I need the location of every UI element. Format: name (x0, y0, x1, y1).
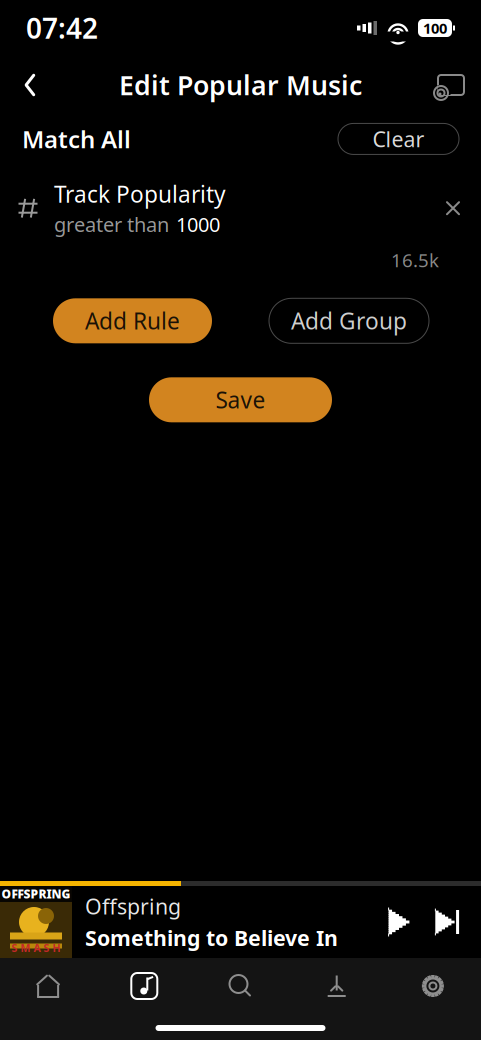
staticText: Add Group (291, 306, 407, 336)
staticText: OFFSPRING (1, 886, 70, 902)
button[interactable]: Remove rule (431, 186, 475, 230)
staticText: Save (215, 385, 265, 415)
staticText: Edit Popular Music (119, 67, 362, 103)
button[interactable]: Downloads (289, 958, 385, 1014)
button[interactable]: Back (8, 63, 52, 107)
staticText: 100 (423, 18, 447, 38)
button[interactable]: Settings (385, 958, 481, 1014)
button[interactable]: Add Rule (53, 298, 212, 343)
button[interactable]: Play (375, 896, 423, 948)
staticText: Offspring (85, 892, 181, 920)
button[interactable]: Cast (429, 63, 473, 107)
staticText: Track Popularity (54, 179, 226, 209)
button[interactable]: Search (192, 958, 289, 1014)
button[interactable]: Home (0, 958, 96, 1014)
staticText: Clear (372, 125, 424, 153)
staticText: Something to Believe In (85, 923, 338, 952)
staticText: 07:42 (26, 9, 98, 47)
button[interactable]: Clear (338, 123, 459, 154)
staticText: greater than (54, 211, 169, 238)
staticText: Match All (22, 123, 131, 155)
staticText: 16.5k (391, 247, 439, 272)
button[interactable]: Add Group (269, 298, 429, 343)
staticText: S M A S H (11, 941, 60, 955)
button[interactable]: Next track (423, 896, 471, 948)
staticText: 1000 (176, 211, 220, 238)
staticText: Add Rule (85, 306, 180, 336)
button[interactable]: Music (96, 958, 192, 1014)
button[interactable]: Save (149, 377, 332, 422)
